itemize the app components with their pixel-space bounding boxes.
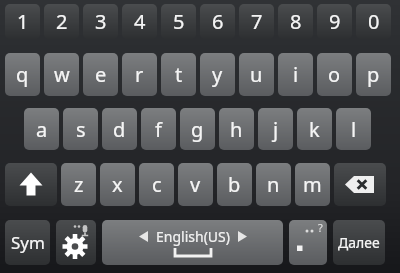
staticText: ? xyxy=(318,220,323,235)
button[interactable]: g xyxy=(180,108,215,150)
button[interactable]: 1 xyxy=(5,4,40,39)
button[interactable]: 7 xyxy=(239,4,274,39)
button[interactable]: d xyxy=(102,108,137,150)
staticText: 5 xyxy=(173,8,185,35)
staticText: English(US) xyxy=(156,227,230,246)
staticText: a xyxy=(36,116,48,143)
button[interactable]: 0 xyxy=(356,4,391,39)
button[interactable]: 4 xyxy=(122,4,157,39)
button[interactable]: k xyxy=(297,108,332,150)
staticText: n xyxy=(267,171,280,198)
button[interactable]: Settings xyxy=(56,220,96,265)
button[interactable]: 6 xyxy=(200,4,235,39)
button[interactable]: 3 xyxy=(83,4,118,39)
staticText: l xyxy=(351,116,357,143)
button[interactable]: v xyxy=(178,163,213,206)
staticText: 2 xyxy=(56,8,68,35)
staticText: x xyxy=(112,171,123,198)
staticText: z xyxy=(74,171,84,198)
staticText: t xyxy=(175,61,183,88)
staticText: c xyxy=(152,171,162,198)
staticText: s xyxy=(76,116,86,143)
staticText: Далее xyxy=(338,233,380,252)
staticText: p xyxy=(367,61,380,88)
button[interactable]: p xyxy=(356,53,391,96)
button[interactable]: b xyxy=(217,163,252,206)
staticText: b xyxy=(228,171,241,198)
staticText: y xyxy=(212,61,223,88)
button[interactable]: n xyxy=(256,163,291,206)
staticText: 9 xyxy=(329,8,341,35)
button[interactable]: l xyxy=(336,108,371,150)
staticText: e xyxy=(95,61,107,88)
button[interactable]: f xyxy=(141,108,176,150)
staticText: u xyxy=(250,61,263,88)
button[interactable]: t xyxy=(161,53,196,96)
button[interactable]: i xyxy=(278,53,313,96)
button[interactable]: 2 xyxy=(44,4,79,39)
staticText: f xyxy=(155,116,162,143)
button[interactable]: x xyxy=(100,163,135,206)
staticText: j xyxy=(273,116,279,143)
button[interactable]: r xyxy=(122,53,157,96)
button[interactable]: j xyxy=(258,108,293,150)
staticText: r xyxy=(135,61,144,88)
button[interactable]: 5 xyxy=(161,4,196,39)
button[interactable]: a xyxy=(24,108,59,150)
button[interactable]: u xyxy=(239,53,274,96)
staticText: w xyxy=(54,61,70,88)
button[interactable]: h xyxy=(219,108,254,150)
button[interactable]: q xyxy=(5,53,40,96)
staticText: 4 xyxy=(134,8,146,35)
staticText: g xyxy=(191,116,204,143)
button[interactable]: z xyxy=(61,163,96,206)
button[interactable]: c xyxy=(139,163,174,206)
button[interactable]: e xyxy=(83,53,118,96)
staticText: 6 xyxy=(212,8,224,35)
staticText: q xyxy=(16,61,29,88)
staticText: 7 xyxy=(251,8,263,35)
button[interactable]: o xyxy=(317,53,352,96)
button[interactable]: s xyxy=(63,108,98,150)
button[interactable]: Далее xyxy=(333,220,385,265)
staticText: o xyxy=(328,61,341,88)
staticText: 0 xyxy=(368,8,380,35)
button[interactable]: Period xyxy=(289,220,327,265)
staticText: Sym xyxy=(11,231,45,254)
staticText: 8 xyxy=(290,8,302,35)
button[interactable]: y xyxy=(200,53,235,96)
staticText: i xyxy=(293,61,299,88)
staticText: m xyxy=(303,171,322,198)
button[interactable]: 9 xyxy=(317,4,352,39)
staticText: k xyxy=(309,116,320,143)
button[interactable]: English(US) xyxy=(102,220,283,265)
staticText: v xyxy=(190,171,201,198)
staticText: d xyxy=(113,116,126,143)
staticText: h xyxy=(230,116,243,143)
button[interactable]: Backspace xyxy=(334,163,386,206)
button[interactable]: 8 xyxy=(278,4,313,39)
button[interactable]: w xyxy=(44,53,79,96)
button[interactable]: Sym xyxy=(5,220,50,265)
staticText: 1 xyxy=(17,8,29,35)
button[interactable]: Shift xyxy=(5,163,57,206)
staticText: 3 xyxy=(95,8,107,35)
button[interactable]: m xyxy=(295,163,330,206)
